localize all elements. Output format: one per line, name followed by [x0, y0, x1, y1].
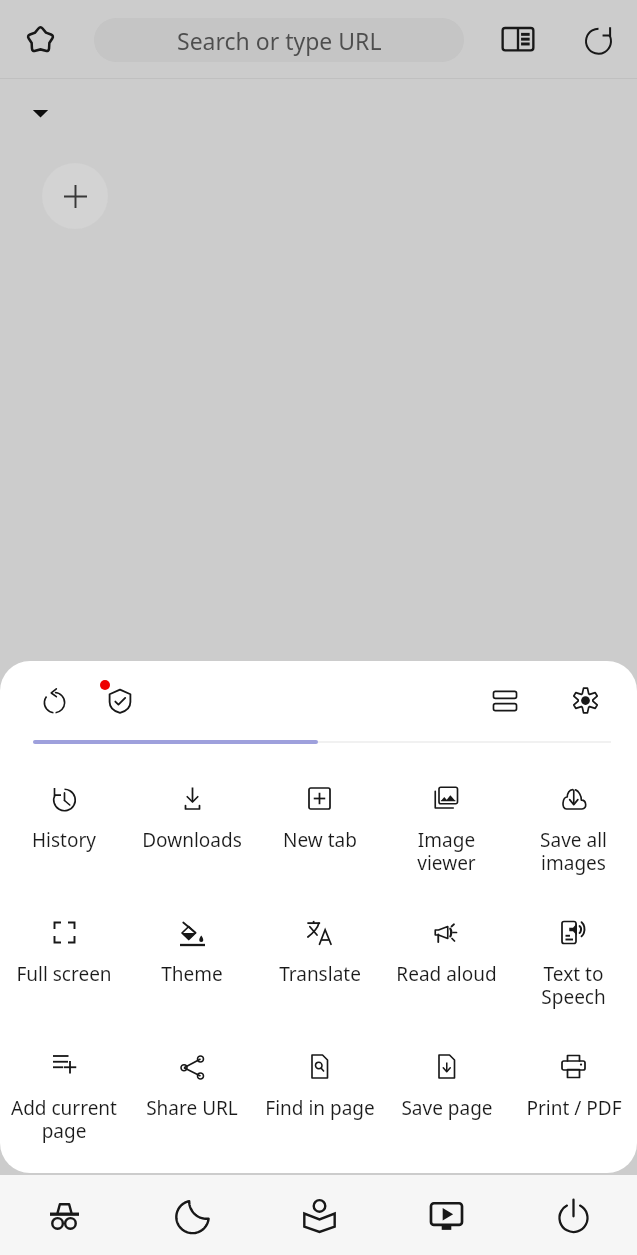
button[interactable]: Search or type URL	[94, 18, 464, 62]
button[interactable]: Image viewer	[383, 774, 510, 904]
button[interactable]: Exit	[510, 1175, 637, 1255]
button[interactable]: History	[0, 774, 128, 904]
staticText: Downloads	[142, 827, 242, 853]
staticText: Save page	[401, 1095, 493, 1121]
button[interactable]: New tab	[42, 163, 108, 229]
staticText: Find in page	[265, 1095, 375, 1121]
button[interactable]: Share URL	[128, 1042, 256, 1172]
button[interactable]: Reading mode	[256, 1175, 383, 1255]
staticText: Read aloud	[396, 961, 497, 987]
button[interactable]: Split screen	[479, 675, 531, 727]
staticText: Translate	[279, 961, 361, 987]
button[interactable]: Find in page	[256, 1042, 383, 1172]
staticText: Add current page	[11, 1095, 117, 1144]
staticText: New tab	[283, 827, 357, 853]
button[interactable]: Translate	[256, 908, 383, 1038]
button[interactable]: Privacy report	[94, 675, 146, 727]
button[interactable]: Print / PDF	[510, 1042, 637, 1172]
staticText: Share URL	[146, 1095, 238, 1121]
button[interactable]: Reload	[28, 675, 80, 727]
staticText: Search or type URL	[177, 25, 382, 56]
staticText: Save all images	[540, 827, 607, 876]
button[interactable]: Incognito mode	[0, 1175, 128, 1255]
button[interactable]: Downloads	[128, 774, 256, 904]
button[interactable]: Save page	[383, 1042, 510, 1172]
button[interactable]: Expand tab list	[23, 96, 57, 130]
staticText: History	[32, 827, 96, 853]
button[interactable]: Bookmarks	[13, 12, 67, 66]
button[interactable]: Settings	[559, 674, 611, 726]
button[interactable]: Save all images	[510, 774, 637, 904]
button[interactable]: Full screen	[0, 908, 128, 1038]
button[interactable]: Video	[383, 1175, 510, 1255]
button[interactable]: New tab	[256, 774, 383, 904]
button[interactable]: Refresh	[571, 12, 625, 66]
button[interactable]: Theme	[128, 908, 256, 1038]
button[interactable]: Text to Speech	[510, 908, 637, 1038]
staticText: Theme	[161, 961, 223, 987]
button[interactable]: Read aloud	[383, 908, 510, 1038]
staticText: Image viewer	[417, 827, 476, 876]
button[interactable]: Add current page	[0, 1042, 128, 1172]
button[interactable]: Reader view	[491, 12, 545, 66]
staticText: Print / PDF	[526, 1095, 622, 1121]
staticText: Text to Speech	[541, 961, 606, 1010]
button[interactable]: Night mode	[128, 1175, 256, 1255]
staticText: Full screen	[16, 961, 112, 987]
